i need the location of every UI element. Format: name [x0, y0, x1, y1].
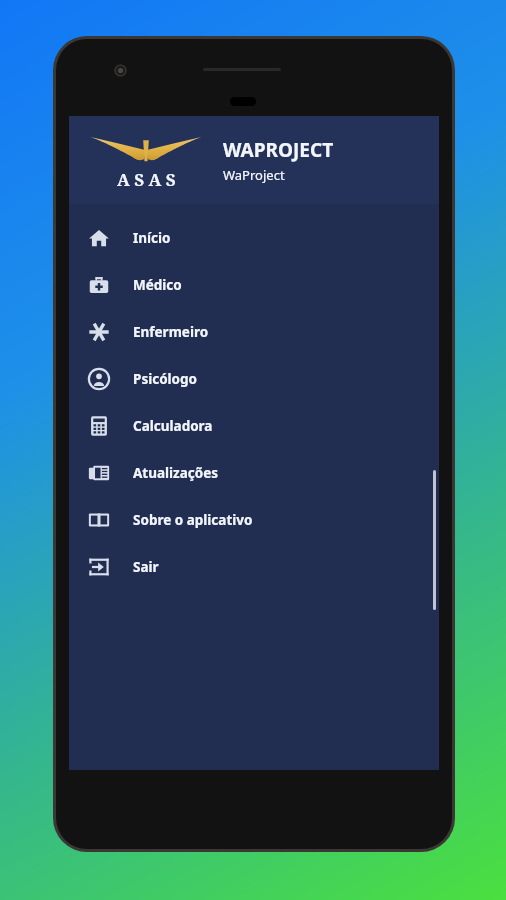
staticText: Atualizações: [133, 464, 219, 482]
button[interactable]: Início: [69, 214, 439, 261]
staticText: A S A S: [117, 168, 176, 191]
button[interactable]: Médico: [69, 261, 439, 308]
staticText: Calculadora: [133, 417, 213, 435]
staticText: WaProject: [223, 166, 285, 184]
button[interactable]: Calculadora: [69, 402, 439, 449]
button[interactable]: Enfermeiro: [69, 308, 439, 355]
button[interactable]: Psicólogo: [69, 355, 439, 402]
staticText: Psicólogo: [133, 370, 198, 388]
button[interactable]: Atualizações: [69, 449, 439, 496]
staticText: Sobre o aplicativo: [133, 511, 253, 529]
staticText: Início: [133, 229, 171, 247]
button[interactable]: Sair: [69, 543, 439, 590]
staticText: WAPROJECT: [223, 137, 334, 163]
staticText: Enfermeiro: [133, 323, 209, 341]
button[interactable]: Sobre o aplicativo: [69, 496, 439, 543]
staticText: Sair: [133, 558, 159, 576]
staticText: Médico: [133, 276, 182, 294]
